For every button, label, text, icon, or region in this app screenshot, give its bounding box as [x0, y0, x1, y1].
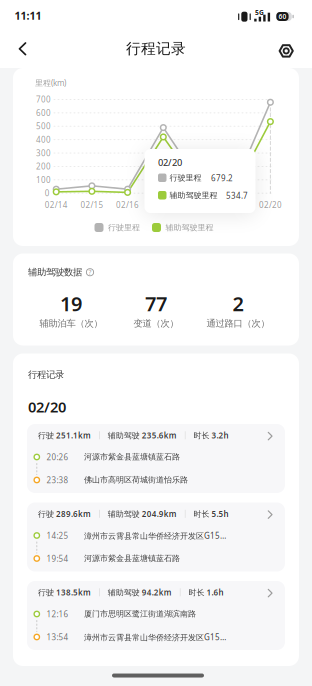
staticText: 700 — [36, 94, 51, 105]
staticText: 辅助驾驶 94.2km — [108, 587, 172, 598]
staticText: 佛山市高明区荷城街道怡乐路 — [84, 475, 188, 485]
staticText: 辅助驾驶 235.6km — [108, 430, 177, 441]
staticText: 02/20 — [28, 397, 66, 416]
staticText: 19 — [60, 290, 82, 317]
staticText: 02/16 — [116, 199, 139, 210]
staticText: 02/15 — [80, 199, 103, 210]
staticText: 辅助驾驶数据 — [28, 266, 82, 278]
staticText: 11:11 — [14, 8, 41, 23]
staticText: 20:26 — [46, 452, 68, 462]
button[interactable]: Back — [0, 0, 36, 32]
staticText: 600 — [36, 107, 51, 118]
staticText: 时长 3.2h — [194, 430, 229, 441]
staticText: 行程记录 — [126, 40, 186, 58]
staticText: 12:16 — [46, 609, 68, 619]
staticText: 400 — [36, 134, 51, 145]
button[interactable]: 行驶 138.5km — [27, 581, 285, 650]
staticText: 里程(km) — [35, 77, 66, 88]
staticText: 时长 1.6h — [189, 587, 224, 598]
staticText: 漳州市云霄县常山华侨经济开发区G15… — [84, 632, 226, 642]
staticText: 行驶里程 — [108, 223, 140, 232]
staticText: 通过路口（次） — [206, 318, 269, 329]
staticText: 200 — [36, 161, 51, 172]
staticText: 厦门市思明区鹭江街道湖滨南路 — [84, 609, 196, 619]
staticText: 辅助泊车（次） — [39, 318, 102, 329]
button[interactable]: Help — [85, 268, 94, 277]
staticText: 行驶 289.6km — [38, 508, 91, 519]
staticText: 时长 5.5h — [194, 508, 229, 519]
staticText: 变道（次） — [133, 318, 178, 329]
button[interactable]: 行驶 289.6km — [27, 502, 285, 571]
staticText: 02/20 — [158, 156, 182, 169]
staticText: 漳州市云霄县常山华侨经济开发区G15… — [84, 530, 226, 541]
staticText: 5G — [255, 8, 264, 17]
staticText: 534.7 — [226, 190, 248, 201]
staticText: 679.2 — [211, 173, 233, 183]
staticText: 13:54 — [46, 632, 68, 642]
staticText: 辅助驾驶 204.9km — [108, 508, 177, 519]
staticText: 辅助驾驶里程 — [169, 190, 217, 200]
staticText: 河源市紫金县蓝塘镇蓝石路 — [84, 452, 180, 462]
staticText: 300 — [36, 148, 51, 158]
staticText: 行驶 138.5km — [38, 587, 91, 598]
staticText: 2 — [232, 290, 243, 317]
staticText: 02/14 — [45, 199, 68, 210]
staticText: 0 — [45, 188, 50, 198]
staticText: 500 — [36, 121, 51, 131]
staticText: 行程记录 — [28, 369, 64, 380]
staticText: 行驶 251.1km — [38, 430, 91, 441]
staticText: 行驶里程 — [169, 173, 201, 183]
staticText: 100 — [36, 174, 51, 185]
staticText: 77 — [145, 290, 167, 317]
button[interactable]: 行驶 251.1km — [27, 424, 285, 493]
staticText: 河源市紫金县蓝塘镇蓝石路 — [84, 553, 180, 563]
staticText: 辅助驾驶里程 — [165, 223, 213, 232]
staticText: 23:38 — [46, 475, 68, 485]
staticText: 60 — [278, 12, 286, 21]
staticText: 14:25 — [46, 530, 68, 541]
staticText: ? — [88, 268, 91, 277]
button[interactable]: Settings — [273, 38, 299, 64]
staticText: 02/20 — [259, 199, 282, 210]
staticText: 19:54 — [46, 553, 68, 564]
